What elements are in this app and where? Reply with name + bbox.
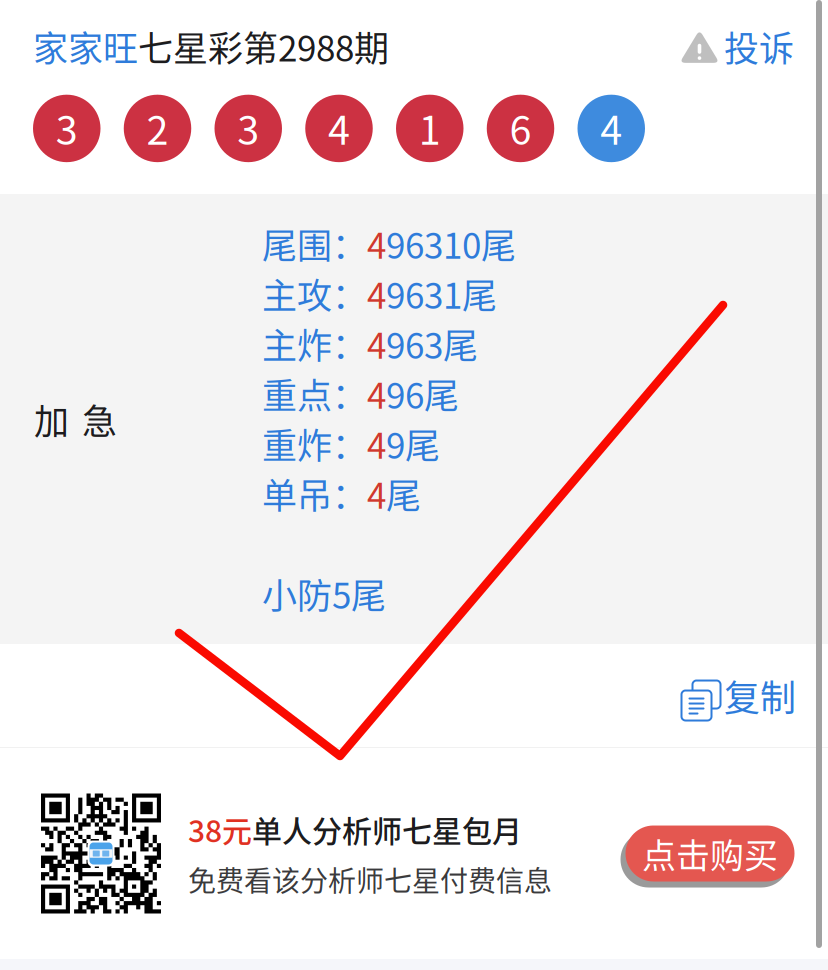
staticText: 4 <box>367 418 386 469</box>
staticText: 尾 <box>386 468 421 519</box>
staticText: 9631尾 <box>386 268 497 319</box>
staticText: 主炸： <box>262 318 367 369</box>
staticText: 投诉 <box>724 21 794 72</box>
button[interactable]: 复制 <box>676 669 828 721</box>
staticText: 9尾 <box>386 418 440 469</box>
staticText: 4 <box>600 99 622 156</box>
staticText: 96310尾 <box>386 218 516 269</box>
staticText: 4 <box>367 218 386 269</box>
staticText: 96尾 <box>386 368 459 419</box>
staticText: 复制 <box>724 669 796 721</box>
button[interactable]: 投诉 <box>679 21 795 72</box>
staticText: 3 <box>56 99 78 156</box>
staticText: 小防5尾 <box>262 568 386 619</box>
staticText: 家家旺 <box>33 21 138 72</box>
staticText: 4 <box>367 368 386 419</box>
staticText: 4 <box>367 268 386 319</box>
staticText: 6 <box>509 99 531 156</box>
staticText: 主攻： <box>262 268 367 319</box>
staticText: 加 <box>34 394 69 445</box>
button[interactable]: 点击购买 <box>620 821 828 885</box>
staticText: 点击购买 <box>642 829 778 878</box>
staticText: 七星彩第2988期 <box>138 21 389 72</box>
staticText: 963尾 <box>386 318 478 369</box>
staticText: 4 <box>367 468 386 519</box>
staticText: 重炸： <box>262 418 367 469</box>
staticText: 免费看该分析师七星付费信息 <box>188 859 552 899</box>
staticText: 4 <box>367 318 386 369</box>
staticText: 尾围： <box>262 218 367 269</box>
staticText: 2 <box>146 99 168 156</box>
staticText: 38元 <box>188 807 252 851</box>
staticText: 单人分析师七星包月 <box>252 807 522 851</box>
staticText: 单吊： <box>262 468 367 519</box>
staticText: 急 <box>82 394 117 445</box>
staticText: 重点： <box>262 368 367 419</box>
staticText: 1 <box>419 99 441 156</box>
staticText: 4 <box>328 99 350 156</box>
staticText: 3 <box>237 99 259 156</box>
